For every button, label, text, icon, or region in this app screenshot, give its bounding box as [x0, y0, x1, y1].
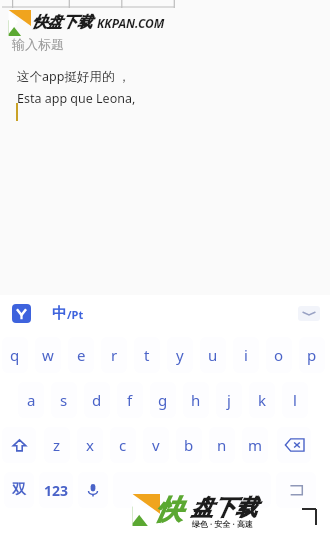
button[interactable]: a	[18, 382, 44, 418]
staticText: d	[92, 390, 102, 410]
button[interactable]: Space	[113, 472, 271, 508]
button[interactable]: e	[68, 337, 94, 373]
button[interactable]: y	[167, 337, 193, 373]
staticText: c	[119, 435, 127, 455]
staticText: 中	[52, 304, 67, 323]
staticText: 盘下载	[191, 494, 257, 522]
button[interactable]: m	[242, 427, 268, 463]
button[interactable]: Backspace	[277, 427, 311, 463]
button[interactable]: s	[51, 382, 77, 418]
button[interactable]: n	[209, 427, 235, 463]
button[interactable]: Input method logo	[12, 304, 31, 323]
button[interactable]: w	[35, 337, 61, 373]
button[interactable]: Voice input	[78, 472, 108, 508]
button[interactable]: d	[84, 382, 110, 418]
staticText: s	[60, 390, 68, 410]
staticText: r	[111, 345, 118, 365]
button[interactable]: i	[233, 337, 259, 373]
button[interactable]: q	[2, 337, 28, 373]
button[interactable]: l	[282, 382, 308, 418]
button[interactable]: c	[110, 427, 136, 463]
staticText: x	[86, 435, 94, 455]
button[interactable]: g	[150, 382, 176, 418]
staticText: z	[53, 435, 61, 455]
staticText: h	[191, 390, 201, 410]
staticText: e	[77, 345, 86, 365]
staticText: p	[307, 345, 317, 365]
staticText: a	[27, 390, 36, 410]
button[interactable]: b	[176, 427, 202, 463]
staticText: q	[10, 345, 20, 365]
staticText: m	[248, 435, 263, 455]
staticText: 绿色 · 安全 · 高速	[192, 518, 253, 529]
staticText: i	[244, 345, 248, 365]
staticText: /Pt	[67, 307, 84, 322]
button[interactable]: Shift	[2, 427, 36, 463]
staticText: KKPAN.COM	[97, 15, 165, 31]
staticText: 这个app挺好用的 ，	[17, 68, 131, 85]
button[interactable]: v	[143, 427, 169, 463]
staticText: l	[293, 390, 297, 410]
button[interactable]: 中	[52, 304, 84, 323]
staticText: 快	[155, 493, 182, 527]
staticText: 123	[44, 481, 69, 500]
staticText: k	[258, 390, 267, 410]
staticText: Esta app que Leona,	[17, 90, 136, 107]
button[interactable]: j	[216, 382, 242, 418]
button[interactable]: z	[44, 427, 70, 463]
button[interactable]: Collapse keyboard	[298, 306, 320, 321]
staticText: n	[217, 435, 227, 455]
staticText: f	[127, 390, 133, 410]
button[interactable]: o	[266, 337, 292, 373]
staticText: y	[176, 345, 184, 365]
button[interactable]: 123	[39, 472, 73, 508]
staticText: 双	[12, 481, 26, 499]
staticText: u	[208, 345, 218, 365]
button[interactable]: t	[134, 337, 160, 373]
button[interactable]: p	[299, 337, 325, 373]
staticText: o	[274, 345, 284, 365]
button[interactable]: k	[249, 382, 275, 418]
button[interactable]: u	[200, 337, 226, 373]
button[interactable]: Enter	[276, 472, 316, 508]
button[interactable]: 双	[4, 472, 34, 508]
staticText: v	[152, 435, 160, 455]
staticText: b	[184, 435, 194, 455]
staticText: t	[144, 345, 150, 365]
staticText: g	[158, 390, 168, 410]
button[interactable]: r	[101, 337, 127, 373]
button[interactable]: h	[183, 382, 209, 418]
button[interactable]: x	[77, 427, 103, 463]
staticText: w	[42, 345, 54, 365]
staticText: 快盘下载	[32, 13, 92, 32]
staticText: j	[227, 390, 231, 410]
staticText: 输入标题	[12, 36, 64, 52]
button[interactable]: f	[117, 382, 143, 418]
